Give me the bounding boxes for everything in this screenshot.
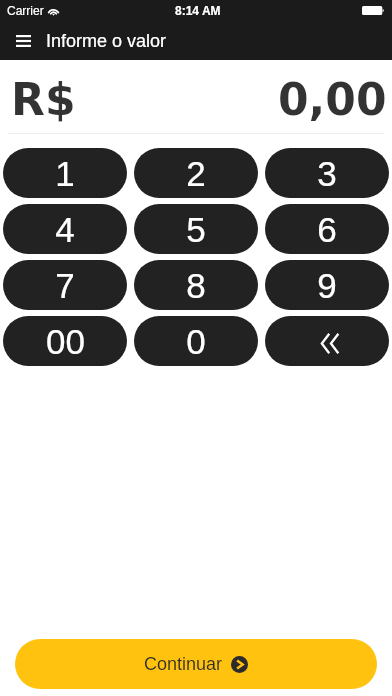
staticText: 1	[55, 154, 75, 193]
staticText: 9	[317, 266, 337, 305]
staticText: R$	[11, 74, 76, 125]
staticText: 3	[317, 154, 337, 193]
staticText: 00	[46, 322, 85, 361]
staticText: 5	[186, 210, 206, 249]
button[interactable]: 2	[134, 148, 258, 198]
button[interactable]: Continuar	[15, 639, 377, 689]
staticText: Informe o valor	[46, 31, 167, 51]
button[interactable]: 8	[134, 260, 258, 310]
staticText: 4	[55, 210, 75, 249]
staticText: 2	[186, 154, 206, 193]
staticText: Carrier	[7, 4, 44, 17]
button[interactable]: 1	[3, 148, 127, 198]
staticText: 0	[186, 322, 206, 361]
button[interactable]: 00	[3, 316, 127, 366]
button[interactable]: 4	[3, 204, 127, 254]
staticText: 8:14 AM	[175, 4, 221, 17]
button[interactable]: 7	[3, 260, 127, 310]
button[interactable]: 5	[134, 204, 258, 254]
button[interactable]: 9	[265, 260, 389, 310]
button[interactable]: 3	[265, 148, 389, 198]
staticText: Continuar	[144, 654, 223, 674]
staticText: 8	[186, 266, 206, 305]
button[interactable]: 6	[265, 204, 389, 254]
staticText: 6	[317, 210, 337, 249]
button[interactable]: Menu	[3, 21, 43, 60]
staticText: 0,00	[278, 74, 387, 125]
button[interactable]: Backspace	[265, 316, 389, 366]
button[interactable]: 0	[134, 316, 258, 366]
staticText: 7	[55, 266, 75, 305]
